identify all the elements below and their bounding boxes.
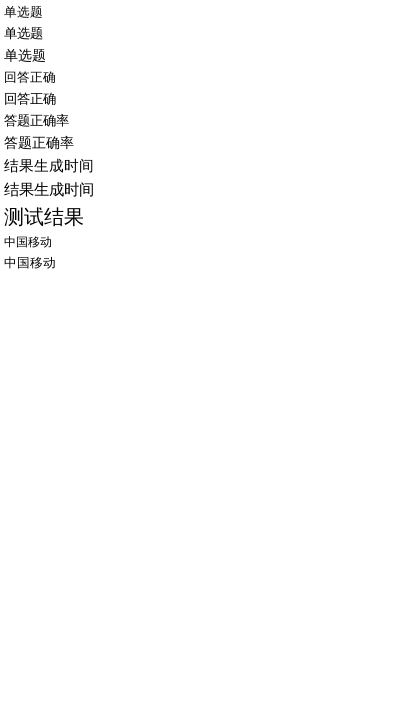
staticText: 结果生成时间 [4, 180, 94, 199]
staticText: 单选题 [4, 25, 43, 42]
staticText: 回答正确 [4, 69, 56, 85]
staticText: 答题正确率 [4, 134, 74, 151]
staticText: 答题正确率 [4, 112, 69, 129]
staticText: 回答正确 [4, 90, 56, 107]
staticText: 中国移动 [4, 235, 52, 250]
staticText: 单选题 [4, 47, 46, 64]
staticText: 单选题 [4, 4, 43, 20]
staticText: 测试结果 [4, 204, 84, 230]
staticText: 结果生成时间 [4, 157, 94, 175]
staticText: 中国移动 [4, 255, 56, 271]
